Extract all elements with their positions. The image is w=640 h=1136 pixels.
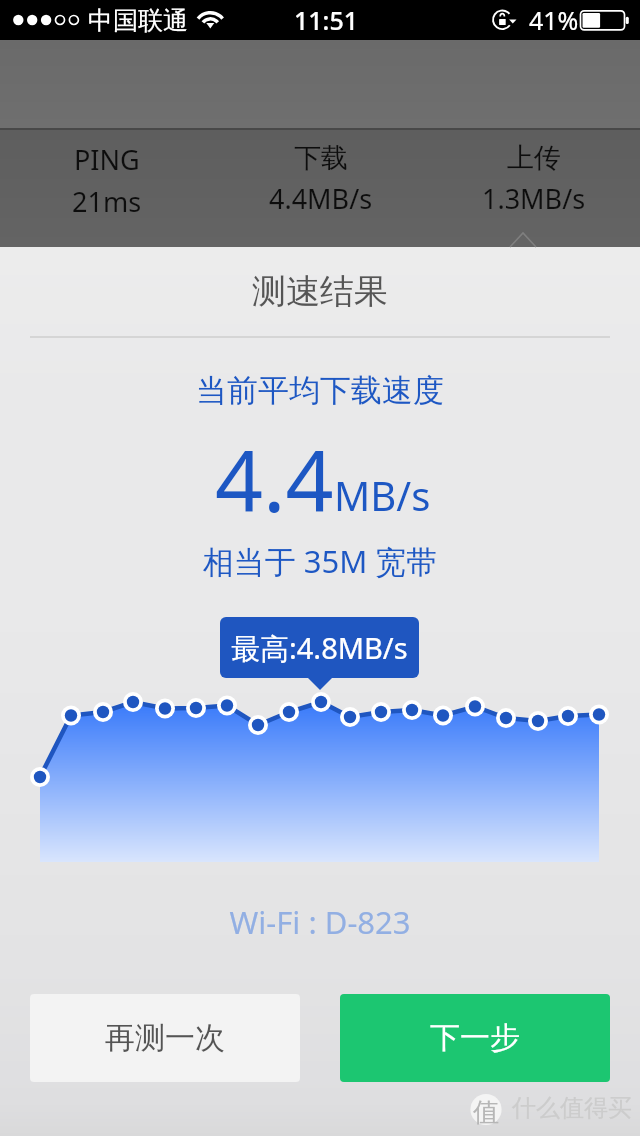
staticText: 值 (473, 1096, 499, 1129)
button[interactable]: 再测一次 (30, 994, 300, 1082)
staticText: 1.3MB/s (482, 180, 586, 217)
staticText: MB/s (334, 468, 431, 522)
staticText: 21ms (72, 183, 142, 220)
staticText: 相当于 35M 宽带 (0, 540, 640, 582)
button[interactable]: 下一步 (340, 994, 610, 1082)
staticText: PING (74, 141, 140, 178)
staticText: 11:51 (294, 3, 359, 37)
staticText: 4.4 (215, 422, 334, 536)
staticText: 4.4MB/s (269, 180, 373, 217)
staticText: 下一步 (430, 1019, 520, 1057)
staticText: 最高:4.8MB/s (231, 628, 408, 668)
staticText: 41% (529, 3, 579, 37)
staticText: 当前平均下载速度 (0, 371, 640, 410)
staticText: 上传 (507, 141, 561, 175)
staticText: 测速结果 (0, 270, 640, 313)
staticText: 下载 (294, 141, 348, 175)
staticText: 中国联通 (88, 5, 188, 36)
staticText: 什么值得买 (512, 1093, 632, 1123)
staticText: Wi-Fi : D-823 (0, 901, 640, 943)
staticText: 再测一次 (105, 1019, 225, 1057)
